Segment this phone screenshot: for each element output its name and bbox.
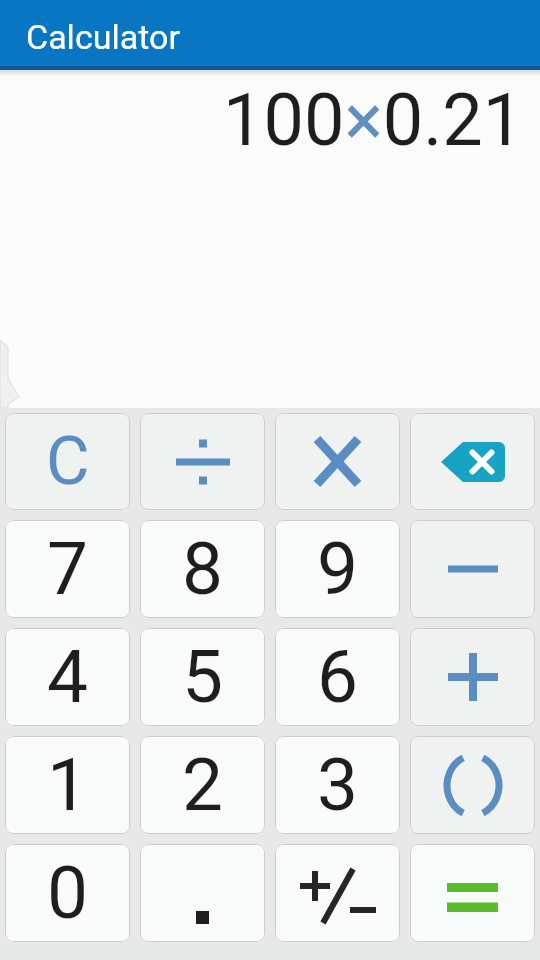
button[interactable]: 1: [5, 736, 130, 834]
button[interactable]: [410, 844, 535, 942]
staticText: C: [46, 422, 90, 501]
button[interactable]: 2: [140, 736, 265, 834]
staticText: 3: [317, 742, 359, 828]
button[interactable]: [140, 413, 265, 510]
staticText: 0: [47, 850, 89, 936]
button[interactable]: 3: [275, 736, 400, 834]
staticText: 9: [317, 526, 359, 612]
staticText: 8: [182, 526, 224, 612]
staticText: 7: [47, 526, 89, 612]
button[interactable]: 6: [275, 628, 400, 726]
button[interactable]: [410, 413, 535, 510]
button[interactable]: C: [5, 413, 130, 510]
button[interactable]: [140, 844, 265, 942]
staticText: Calculator: [26, 17, 180, 57]
button[interactable]: [410, 736, 535, 834]
button[interactable]: 7: [5, 520, 130, 618]
staticText: 6: [317, 634, 359, 720]
staticText: 1: [47, 742, 89, 828]
button[interactable]: 5: [140, 628, 265, 726]
button[interactable]: 0: [5, 844, 130, 942]
button[interactable]: 9: [275, 520, 400, 618]
staticText: 5: [182, 634, 224, 720]
button[interactable]: [275, 844, 400, 942]
staticText: 4: [47, 634, 89, 720]
button[interactable]: [410, 628, 535, 726]
staticText: 100×0.21: [223, 78, 524, 162]
button[interactable]: [275, 413, 400, 510]
button[interactable]: 4: [5, 628, 130, 726]
staticText: 2: [182, 742, 224, 828]
button[interactable]: 8: [140, 520, 265, 618]
button[interactable]: [410, 520, 535, 618]
